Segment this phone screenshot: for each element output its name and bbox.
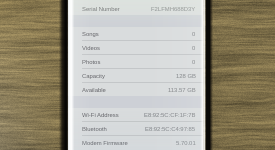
staticText: 5.70.01: [176, 140, 196, 147]
staticText: Available: [82, 87, 106, 94]
button[interactable]: Songs: [68, 27, 203, 41]
button[interactable]: Wi-Fi Address: [68, 108, 203, 122]
button[interactable]: Photos: [68, 55, 203, 69]
staticText: E8:92:5C:C4:97:85: [145, 126, 196, 133]
staticText: 128 GB: [176, 73, 196, 80]
button[interactable]: Modem Firmware: [68, 136, 203, 150]
staticText: 113.57 GB: [168, 87, 196, 94]
staticText: Wi-Fi Address: [82, 112, 119, 119]
staticText: Photos: [82, 59, 101, 66]
staticText: Capacity: [82, 73, 105, 80]
staticText: Modem Firmware: [82, 140, 128, 147]
staticText: Songs: [82, 31, 99, 38]
button[interactable]: Videos: [68, 41, 203, 55]
staticText: Serial Number: [82, 6, 120, 13]
staticText: 0: [192, 31, 196, 38]
staticText: E8:92:5C:CF:1F:7B: [144, 112, 196, 119]
staticText: Bluetooth: [82, 126, 107, 133]
staticText: 0: [192, 45, 196, 52]
staticText: Videos: [82, 45, 100, 52]
button[interactable]: Available: [68, 83, 203, 97]
staticText: 0: [192, 59, 196, 66]
button[interactable]: Capacity: [68, 69, 203, 83]
staticText: F2LFMH688D3Y: [151, 6, 196, 13]
button[interactable]: Serial Number: [68, 2, 203, 16]
button[interactable]: Bluetooth: [68, 122, 203, 136]
